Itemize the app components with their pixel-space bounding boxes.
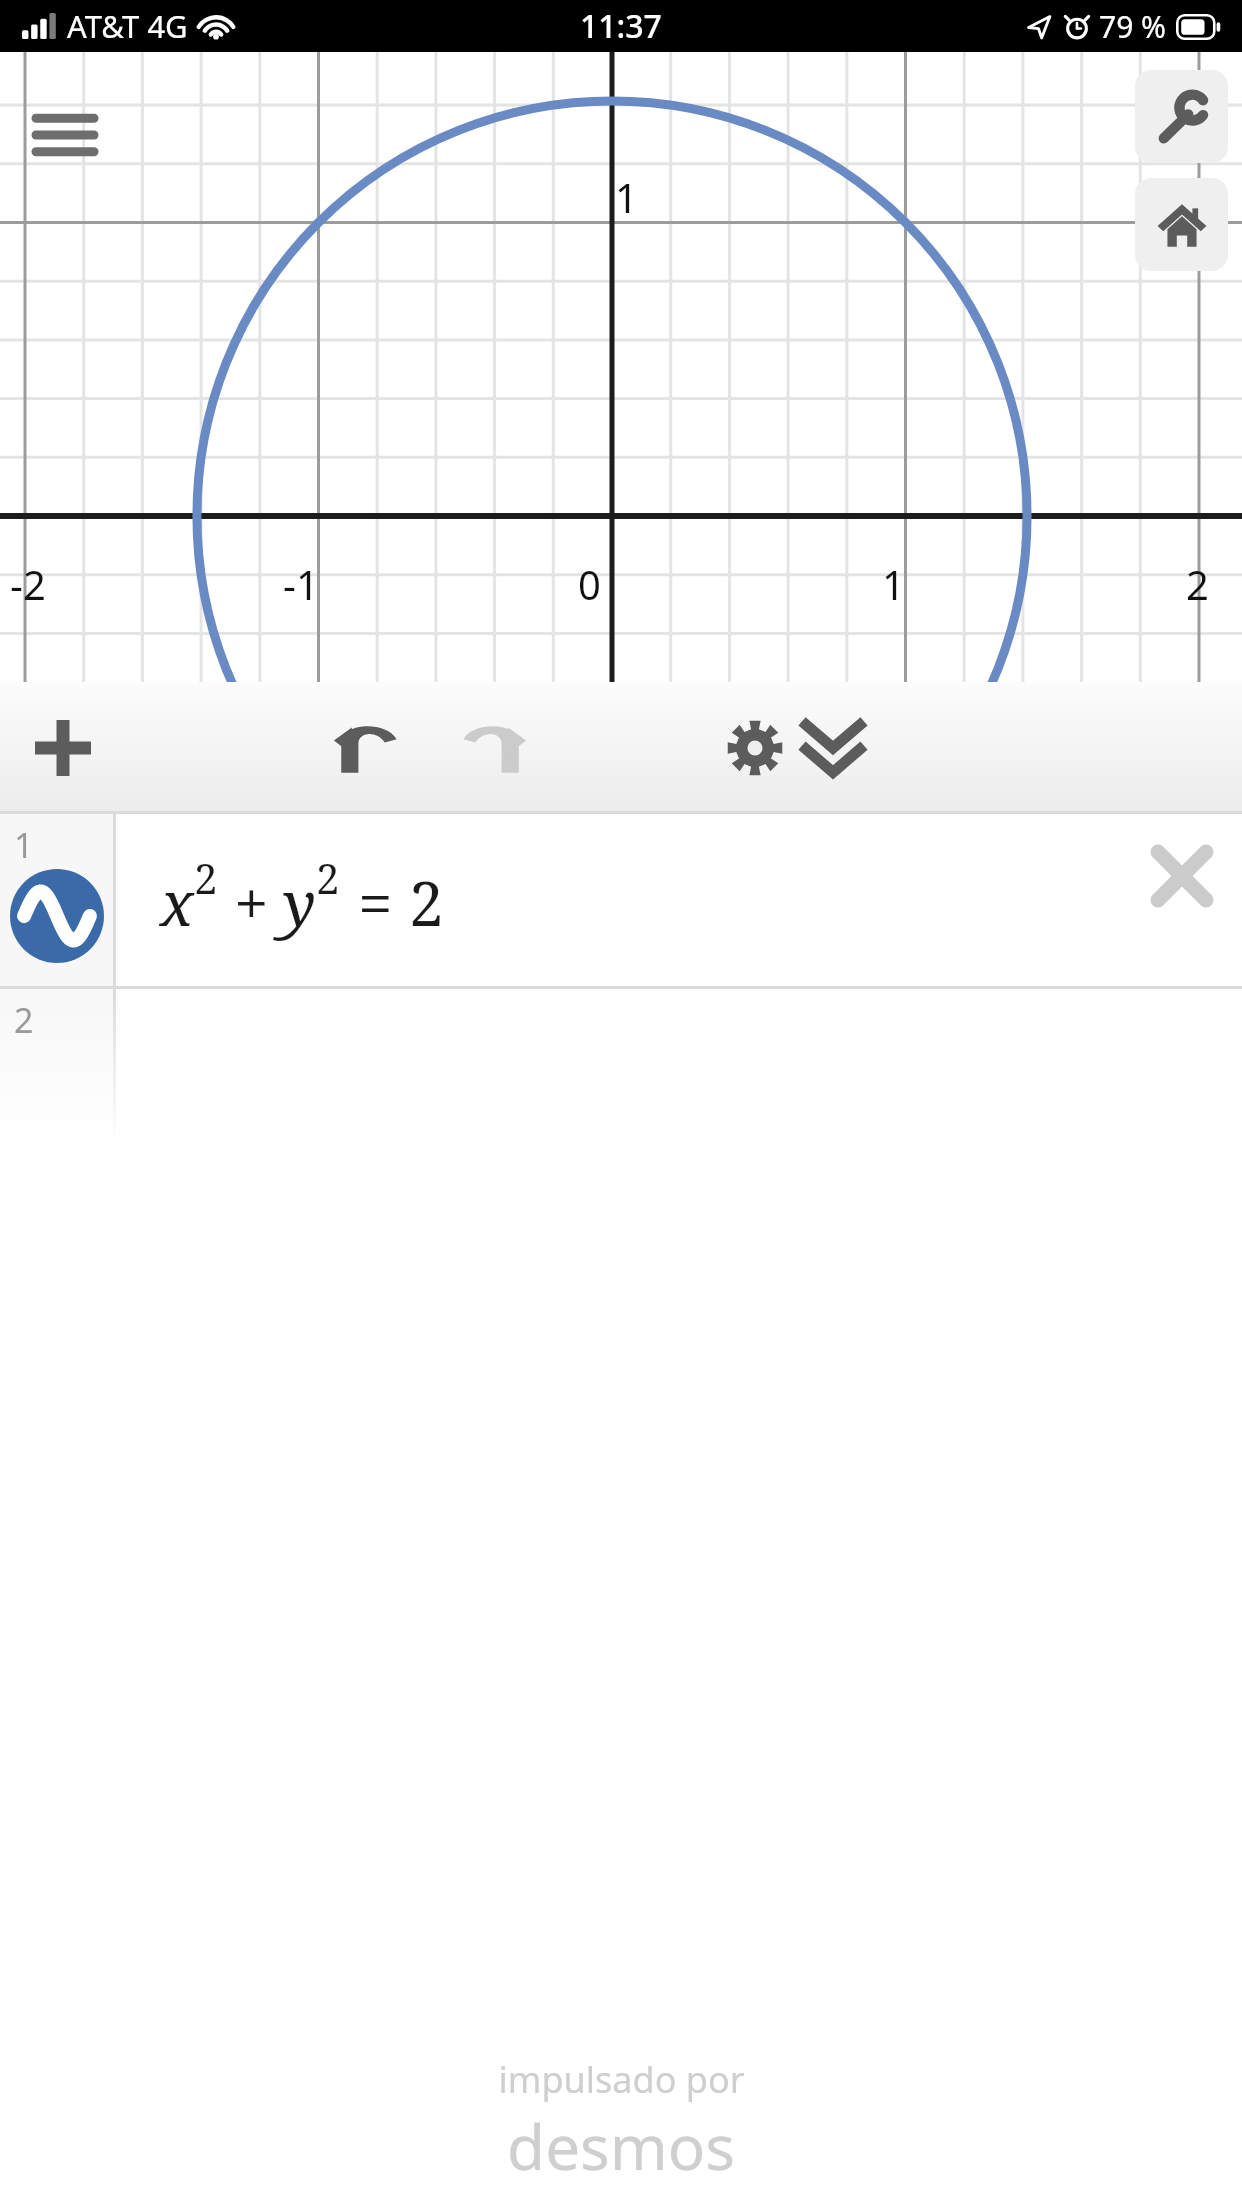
button[interactable]: Redo [430, 682, 560, 814]
staticText: impulsado por [498, 2055, 745, 2104]
button[interactable]: Menu [20, 90, 110, 180]
staticText: 1 [615, 170, 638, 224]
staticText: = [358, 860, 393, 944]
staticText: y [283, 860, 316, 944]
staticText: 0 [578, 557, 601, 611]
button[interactable]: 2 [0, 989, 1242, 1144]
button[interactable]: Add expression [8, 682, 118, 814]
staticText: 1 [882, 557, 905, 611]
staticText: 2 [14, 997, 34, 1043]
staticText: 1 [14, 822, 34, 868]
staticText: 79 % [1099, 6, 1167, 47]
button[interactable]: Home [1135, 178, 1228, 271]
button[interactable]: Settings [700, 682, 810, 814]
staticText: AT&T 4G [67, 5, 188, 47]
staticText: 2 [1186, 557, 1209, 611]
staticText: desmos [507, 2104, 735, 2188]
staticText: 2 [316, 849, 340, 906]
staticText: -2 [10, 557, 46, 611]
staticText: x [160, 860, 194, 944]
staticText: -1 [283, 557, 319, 611]
button[interactable]: Tools [1135, 70, 1228, 163]
staticText: 11:37 [580, 4, 662, 48]
button[interactable]: Collapse keypad [778, 682, 888, 814]
staticText: 2 [194, 849, 218, 906]
staticText: + [234, 860, 269, 944]
button[interactable]: Delete expression [1142, 836, 1222, 916]
button[interactable]: Toggle graph [10, 869, 104, 963]
button[interactable]: Undo [300, 682, 430, 814]
staticText: 2 [409, 860, 444, 944]
